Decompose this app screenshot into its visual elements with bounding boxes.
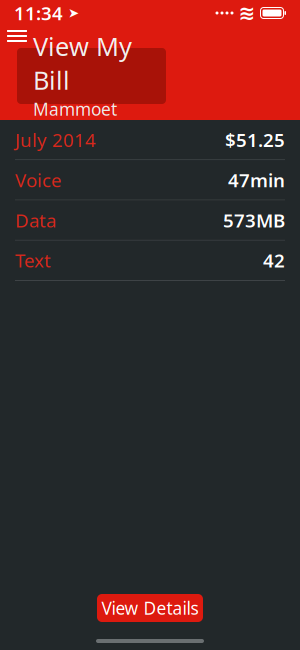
- staticText: View Details: [101, 596, 198, 619]
- staticText: 11:34: [14, 1, 63, 25]
- staticText: 573MB: [223, 208, 285, 233]
- staticText: July 2014: [15, 127, 96, 152]
- staticText: View My Bill: [33, 29, 132, 97]
- staticText: Text: [15, 248, 51, 273]
- button[interactable]: View My Bill: [17, 48, 166, 104]
- button[interactable]: July 2014: [0, 120, 300, 159]
- staticText: $51.25: [225, 127, 285, 152]
- button[interactable]: Data: [0, 200, 300, 240]
- staticText: ≋: [238, 2, 255, 24]
- staticText: 47min: [228, 168, 285, 192]
- staticText: Voice: [15, 168, 62, 192]
- staticText: Mammoet: [33, 98, 117, 121]
- button[interactable]: View Details: [97, 594, 203, 622]
- staticText: Data: [15, 208, 56, 233]
- button[interactable]: Voice: [0, 160, 300, 200]
- button[interactable]: Text: [0, 241, 300, 280]
- staticText: ➤: [63, 5, 79, 20]
- button[interactable]: Menu: [0, 26, 34, 46]
- staticText: 42: [263, 248, 285, 273]
